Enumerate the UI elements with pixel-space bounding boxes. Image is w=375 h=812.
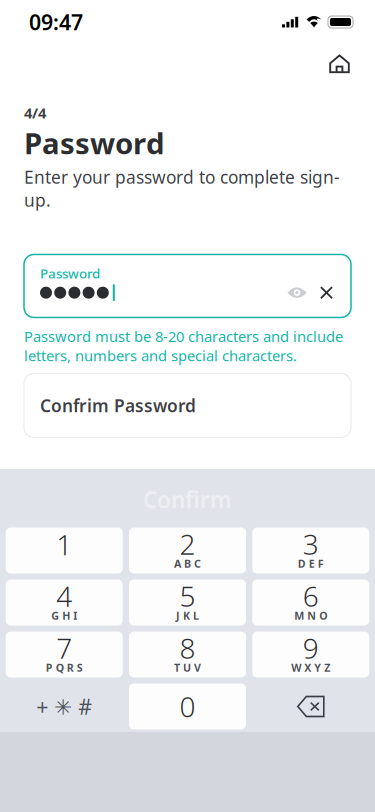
staticText: Password xyxy=(40,264,100,282)
button[interactable]: Symbols xyxy=(6,683,123,729)
staticText: 6 xyxy=(303,577,319,615)
staticText: + ✳ # xyxy=(36,692,92,721)
button[interactable]: 7 xyxy=(6,631,123,677)
staticText: J K L xyxy=(176,608,199,623)
button[interactable]: 1 xyxy=(6,527,123,573)
staticText: W X Y Z xyxy=(291,660,330,675)
staticText: Confrim Password xyxy=(40,394,196,417)
staticText: Password must be 8-20 characters and inc… xyxy=(24,326,343,365)
button[interactable]: Clear password xyxy=(315,281,338,304)
staticText: 5 xyxy=(179,577,195,615)
button[interactable]: 2 xyxy=(129,527,246,573)
staticText: Password xyxy=(24,123,165,162)
staticText: G H I xyxy=(51,608,77,623)
button[interactable]: 5 xyxy=(129,579,246,625)
staticText: 4/4 xyxy=(24,103,46,122)
button[interactable]: 8 xyxy=(129,631,246,677)
staticText: D E F xyxy=(298,556,324,571)
button[interactable]: 0 xyxy=(129,683,246,729)
staticText: T U V xyxy=(174,660,201,675)
staticText: Enter your password to complete sign-up. xyxy=(24,165,340,211)
button[interactable]: 3 xyxy=(252,527,369,573)
staticText: P Q R S xyxy=(46,660,83,675)
staticText: A B C xyxy=(174,556,201,571)
button[interactable]: Delete xyxy=(252,683,369,729)
button[interactable]: 4 xyxy=(6,579,123,625)
staticText: 0 xyxy=(179,688,195,725)
button[interactable]: 6 xyxy=(252,579,369,625)
staticText: 1 xyxy=(56,526,72,563)
staticText: M N O xyxy=(294,608,327,623)
staticText: 4 xyxy=(56,577,72,615)
button[interactable]: 9 xyxy=(252,631,369,677)
staticText: Confirm xyxy=(143,484,232,514)
button[interactable]: Home xyxy=(324,49,355,79)
staticText: 9 xyxy=(303,629,319,667)
staticText: 09:47 xyxy=(29,8,83,36)
staticText: 7 xyxy=(56,629,72,667)
button[interactable]: Show password xyxy=(283,283,311,303)
staticText: 8 xyxy=(179,629,195,667)
staticText: 2 xyxy=(179,525,195,563)
staticText: 3 xyxy=(303,525,319,563)
